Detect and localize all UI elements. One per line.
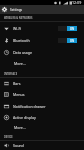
button[interactable]: More... (0, 122, 84, 133)
staticText: Wi-Fi (13, 26, 22, 31)
button[interactable]: Settings (0, 5, 84, 14)
staticText: More... (14, 125, 26, 130)
staticText: ON (70, 27, 74, 31)
staticText: Menus (13, 92, 25, 97)
button[interactable]: Notification drawer (0, 100, 84, 112)
staticText: Settings (10, 8, 23, 12)
staticText: Active display (13, 115, 36, 120)
button[interactable]: More... (0, 58, 84, 69)
button[interactable]: Data usage (0, 46, 84, 58)
staticText: Bars (13, 81, 21, 86)
button[interactable]: Bars (0, 78, 84, 88)
staticText: INTERFACE (4, 72, 18, 75)
button[interactable]: Bluetooth (0, 35, 84, 46)
button[interactable]: Sound (0, 141, 84, 150)
staticText: Bluetooth (13, 38, 30, 43)
staticText: DEVICE (4, 135, 13, 138)
button[interactable]: Active display (0, 112, 84, 122)
staticText: ON (70, 39, 74, 43)
staticText: Sound (13, 143, 24, 148)
staticText: WIRELESS & NETWORKS (4, 16, 33, 19)
button[interactable]: Menus (0, 88, 84, 100)
staticText: Data usage (13, 50, 33, 55)
staticText: 12:09 (72, 0, 82, 5)
other: Settings (2, 7, 7, 12)
button[interactable]: Wi-Fi (0, 22, 84, 35)
staticText: More... (14, 61, 26, 66)
staticText: Notification drawer (13, 104, 46, 109)
